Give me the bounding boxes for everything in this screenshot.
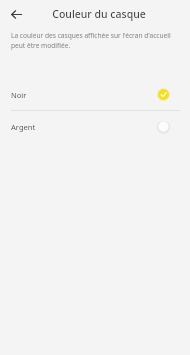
staticText: Argent [11,122,36,132]
staticText: La couleur des casques affichée sur l'éc… [11,31,171,50]
staticText: Noir [11,90,27,100]
button[interactable]: Back [5,3,27,25]
button[interactable]: Noir [0,79,190,110]
button[interactable]: Argent [0,111,190,142]
staticText: Couleur du casque [52,7,146,21]
